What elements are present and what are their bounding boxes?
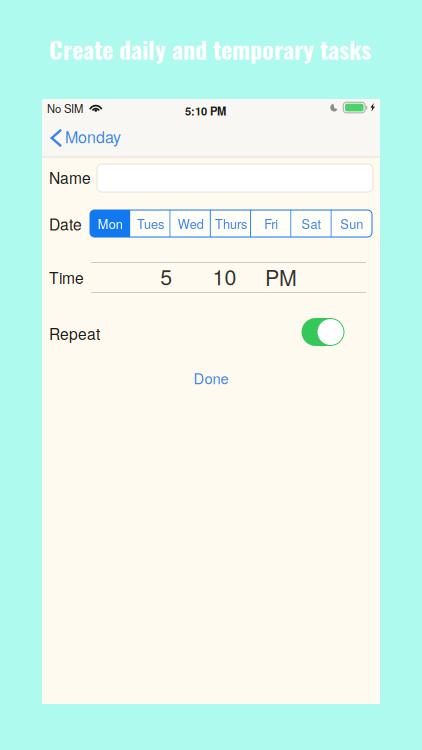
button[interactable]: Done: [171, 369, 251, 387]
button[interactable]: Mon: [90, 210, 130, 237]
staticText: Sat: [302, 214, 322, 233]
staticText: Thurs: [215, 214, 247, 233]
staticText: 5: [160, 261, 172, 291]
staticText: Sun: [340, 214, 363, 233]
staticText: PM: [265, 261, 297, 292]
staticText: No SIM: [47, 100, 83, 116]
staticText: Time: [49, 266, 84, 288]
staticText: Done: [193, 367, 228, 388]
staticText: Wed: [178, 214, 204, 233]
staticText: Monday: [65, 125, 121, 148]
button[interactable]: Fri: [251, 210, 291, 237]
button[interactable]: Sat: [291, 210, 332, 237]
staticText: Fri: [264, 214, 278, 233]
staticText: 10: [212, 261, 236, 291]
staticText: Date: [49, 212, 82, 235]
staticText: Mon: [98, 214, 123, 233]
staticText: Repeat: [49, 322, 100, 344]
button[interactable]: Thurs: [211, 210, 251, 237]
button[interactable]: Repeat: [301, 318, 344, 346]
staticText: 5:10 PM: [185, 103, 226, 119]
button[interactable]: Monday: [44, 120, 130, 154]
staticText: Name: [49, 166, 91, 188]
staticText: Tues: [137, 214, 164, 233]
button[interactable]: Wed: [171, 210, 211, 237]
staticText: Create daily and temporary tasks: [49, 31, 371, 67]
button[interactable]: Tues: [130, 210, 171, 237]
button[interactable]: Sun: [332, 210, 372, 237]
